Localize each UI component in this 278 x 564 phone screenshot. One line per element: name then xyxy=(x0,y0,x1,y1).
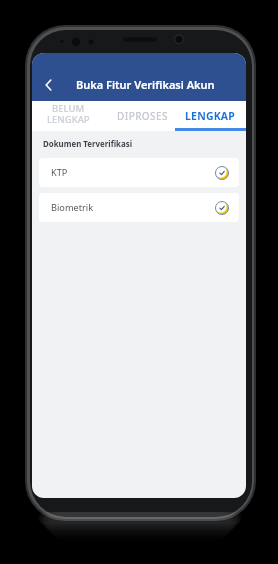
button[interactable] xyxy=(32,67,66,101)
button[interactable]: Biometrik xyxy=(39,193,239,222)
staticText: BELUM xyxy=(52,102,85,115)
staticText: Biometrik xyxy=(51,201,94,214)
staticText: KTP xyxy=(51,166,68,179)
staticText: Buka Fitur Verifikasi Akun xyxy=(76,77,215,92)
button[interactable]: BELUM xyxy=(32,101,104,131)
staticText: DIPROSES xyxy=(117,109,168,123)
button[interactable]: KTP xyxy=(39,158,239,187)
button[interactable]: LENGKAP xyxy=(175,101,246,131)
staticText: LENGKAP xyxy=(47,113,90,126)
staticText: Dokumen Terverifikasi xyxy=(43,139,132,150)
staticText: LENGKAP xyxy=(185,109,236,123)
button[interactable]: DIPROSES xyxy=(104,101,175,131)
